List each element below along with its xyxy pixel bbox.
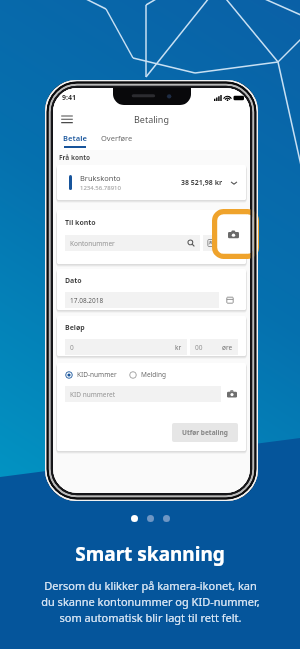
staticText: Dato (65, 276, 82, 286)
button[interactable]: Utfør betaling (172, 423, 238, 442)
button[interactable]: KID-nummer (65, 370, 117, 379)
staticText: 0 (70, 343, 74, 352)
staticText: 17.08.2018 (70, 296, 104, 305)
staticText: kr (175, 343, 182, 352)
button[interactable]: Menu (60, 112, 74, 126)
button[interactable] (147, 515, 154, 522)
staticText: KID-nummer (77, 370, 117, 379)
staticText: Beløp (65, 323, 85, 333)
button[interactable]: Contacts (203, 235, 219, 251)
staticText: 38 521,98 kr (181, 178, 223, 188)
button[interactable]: Scan account number with camera (212, 209, 259, 259)
staticText: Betale (63, 133, 87, 143)
staticText: Brukskonto (80, 173, 121, 183)
staticText: KID nummeret (70, 390, 116, 399)
button[interactable] (131, 515, 138, 522)
staticText: Overføre (101, 133, 133, 143)
button[interactable]: Scan KID with camera (226, 388, 238, 400)
staticText: Kontonummer (70, 239, 115, 248)
staticText: Betaling (134, 113, 169, 125)
staticText: øre (222, 343, 233, 352)
staticText: Melding (141, 370, 166, 379)
staticText: 1234.56.78910 (80, 184, 121, 192)
button[interactable] (163, 515, 170, 522)
button[interactable]: Betale (60, 131, 90, 150)
staticText: Utfør betaling (182, 428, 228, 437)
button[interactable]: Overføre (98, 131, 136, 150)
button[interactable]: Pick date (222, 292, 238, 308)
staticText: 00 (195, 343, 203, 352)
button[interactable]: Scan account number with camera (222, 235, 238, 251)
staticText: Til konto (65, 218, 96, 228)
staticText: Smart skanning (75, 541, 225, 567)
staticText: Dersom du klikker på kamera-ikonet, kan … (41, 578, 260, 625)
staticText: Frå konto (59, 153, 91, 162)
staticText: 9:41 (62, 93, 76, 103)
button[interactable]: Melding (129, 370, 166, 379)
